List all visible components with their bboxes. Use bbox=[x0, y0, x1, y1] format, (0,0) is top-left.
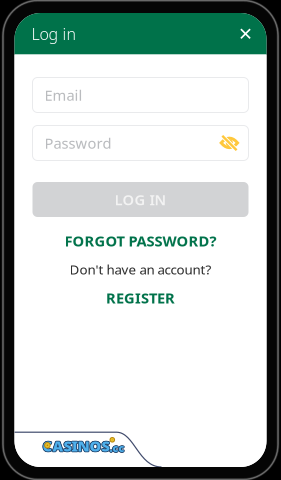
button[interactable]: Close bbox=[234, 23, 256, 45]
staticText: .cc bbox=[109, 442, 124, 456]
staticText: LOG IN bbox=[114, 190, 166, 209]
staticText: CASINOS bbox=[43, 436, 110, 456]
staticText: .cc bbox=[109, 441, 124, 456]
staticText: .cc bbox=[109, 441, 124, 455]
staticText: CASINOS bbox=[42, 436, 109, 455]
staticText: .cc bbox=[110, 440, 125, 455]
staticText: FORGOT PASSWORD? bbox=[64, 231, 216, 250]
staticText: CASINOS bbox=[42, 437, 109, 456]
staticText: .cc bbox=[110, 441, 125, 455]
staticText: CASINOS bbox=[43, 435, 110, 455]
staticText: REGISTER bbox=[106, 288, 175, 308]
staticText: .cc bbox=[110, 441, 125, 456]
button[interactable]: LOG IN bbox=[32, 182, 248, 217]
staticText: CASINOS bbox=[42, 436, 109, 456]
staticText: .cc bbox=[109, 440, 124, 454]
staticText: Don't have an account? bbox=[69, 260, 211, 278]
button[interactable]: FORGOT PASSWORD? bbox=[32, 231, 248, 250]
staticText: CASINOS bbox=[42, 435, 109, 455]
staticText: CASINOS bbox=[42, 435, 109, 455]
button[interactable]: Show password bbox=[220, 136, 238, 150]
staticText: CASINOS bbox=[43, 436, 110, 455]
staticText: .cc bbox=[109, 440, 124, 455]
button[interactable]: REGISTER bbox=[32, 288, 248, 308]
staticText: Email bbox=[44, 85, 82, 105]
staticText: Password bbox=[44, 133, 111, 153]
staticText: Log in bbox=[31, 23, 76, 44]
staticText: CASINOS bbox=[42, 436, 109, 455]
staticText: .cc bbox=[109, 441, 124, 455]
